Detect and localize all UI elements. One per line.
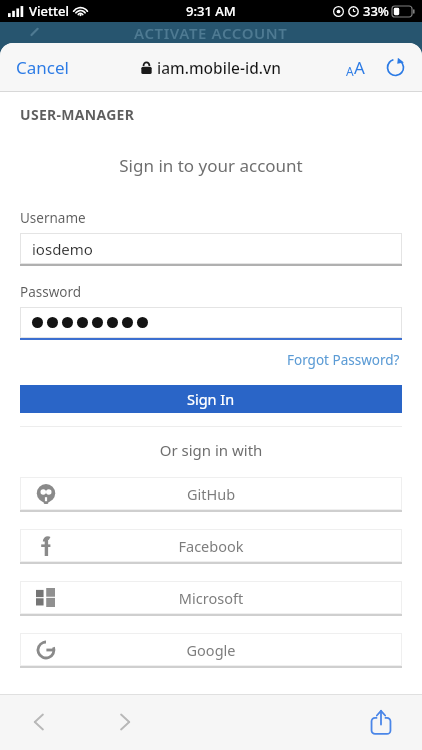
staticText: GitHub xyxy=(20,484,402,504)
staticText: Forgot Password? xyxy=(287,351,400,369)
staticText: Facebook xyxy=(20,536,402,556)
button[interactable]: iosdemo xyxy=(20,233,402,266)
button[interactable]: Reload xyxy=(383,55,408,80)
staticText: Username xyxy=(20,209,86,227)
button[interactable]: Forgot Password? xyxy=(285,349,402,371)
staticText: Viettel xyxy=(29,2,69,20)
button[interactable]: Facebook xyxy=(20,529,402,564)
button[interactable]: Back xyxy=(24,703,54,741)
staticText: USER-MANAGER xyxy=(20,105,135,124)
staticText: Or sign in with xyxy=(0,440,422,460)
staticText: Microsoft xyxy=(20,588,402,608)
button[interactable]: Share xyxy=(364,703,398,741)
staticText: Cancel xyxy=(16,56,69,79)
button[interactable]: Google xyxy=(20,633,402,668)
staticText: Password xyxy=(20,283,82,301)
staticText: 9:31 AM xyxy=(186,2,236,20)
button[interactable] xyxy=(20,307,402,340)
staticText: A xyxy=(354,56,365,79)
staticText: ACTIVATE ACCOUNT xyxy=(134,23,288,43)
button[interactable]: Text size xyxy=(342,52,369,83)
staticText: 33% xyxy=(363,2,389,20)
button[interactable]: Forward xyxy=(110,703,140,741)
staticText: iosdemo xyxy=(32,239,93,259)
button[interactable]: Sign In xyxy=(20,385,402,413)
button[interactable]: Microsoft xyxy=(20,581,402,616)
staticText: Google xyxy=(20,640,402,660)
staticText: A xyxy=(346,63,354,79)
button[interactable]: Cancel xyxy=(10,50,75,85)
staticText: iam.mobile-id.vn xyxy=(157,57,281,78)
button[interactable]: GitHub xyxy=(20,477,402,512)
staticText: Sign in to your account xyxy=(0,154,422,177)
staticText: Sign In xyxy=(187,389,235,409)
